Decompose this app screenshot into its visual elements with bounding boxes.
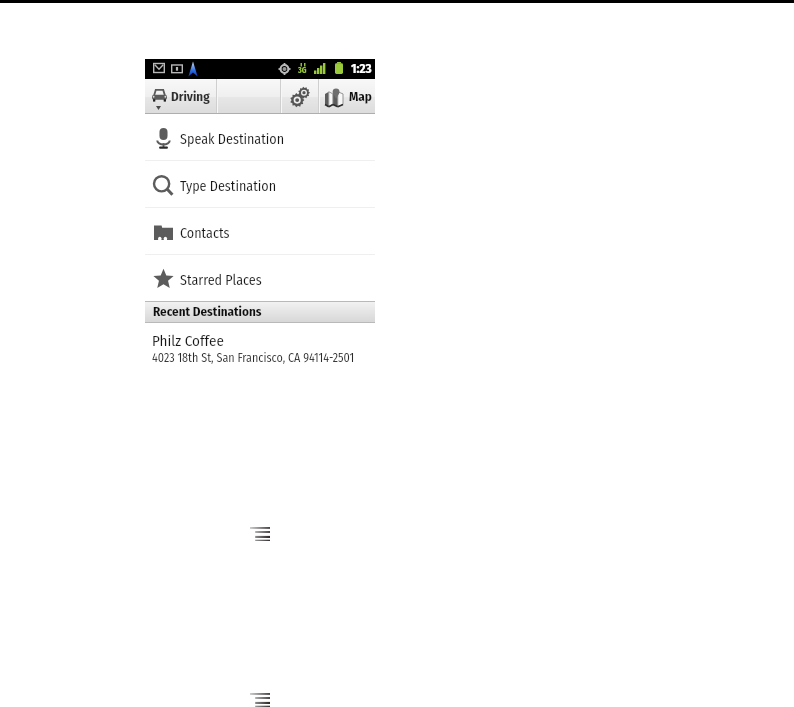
staticText: 1:23 bbox=[351, 61, 372, 77]
staticText: Philz Coffee bbox=[152, 332, 224, 350]
staticText: 4023 18th St, San Francisco, CA 94114-25… bbox=[152, 351, 355, 365]
button[interactable]: Settings bbox=[282, 79, 318, 114]
staticText: Contacts bbox=[180, 225, 230, 242]
staticText: Starred Places bbox=[180, 272, 262, 289]
button[interactable]: Speak Destination bbox=[145, 114, 375, 160]
button[interactable]: Map bbox=[320, 79, 375, 114]
staticText: Type Destination bbox=[180, 178, 277, 195]
button[interactable]: Type Destination bbox=[145, 161, 375, 207]
button[interactable]: Philz Coffee bbox=[145, 332, 375, 365]
staticText: 3G bbox=[298, 66, 307, 76]
button[interactable]: Driving bbox=[145, 79, 216, 114]
staticText: Map bbox=[349, 89, 372, 105]
staticText: Speak Destination bbox=[180, 131, 285, 148]
staticText: Driving bbox=[171, 89, 210, 105]
staticText: Recent Destinations bbox=[153, 304, 262, 320]
button[interactable]: Starred Places bbox=[145, 255, 375, 301]
button[interactable]: Contacts bbox=[145, 208, 375, 254]
